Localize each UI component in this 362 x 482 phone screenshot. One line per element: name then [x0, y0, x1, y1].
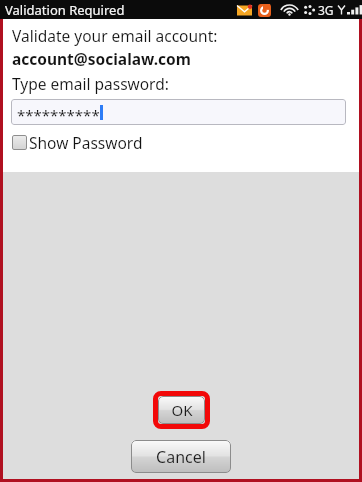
staticText: Validation Required	[5, 1, 125, 19]
staticText: Show Password	[29, 132, 143, 153]
staticText: OK	[171, 400, 193, 420]
staticText: Cancel	[156, 446, 206, 468]
staticText: account@socialaw.com	[12, 48, 191, 69]
button[interactable]: OK	[158, 396, 205, 424]
button[interactable]: Cancel	[131, 440, 231, 473]
button[interactable]: Show Password	[12, 132, 143, 153]
button[interactable]: **********	[11, 99, 346, 125]
staticText: Type email password:	[12, 73, 169, 94]
staticText: 3G	[318, 2, 334, 18]
staticText: Validate your email account:	[12, 25, 218, 46]
staticText: **********	[17, 105, 100, 125]
